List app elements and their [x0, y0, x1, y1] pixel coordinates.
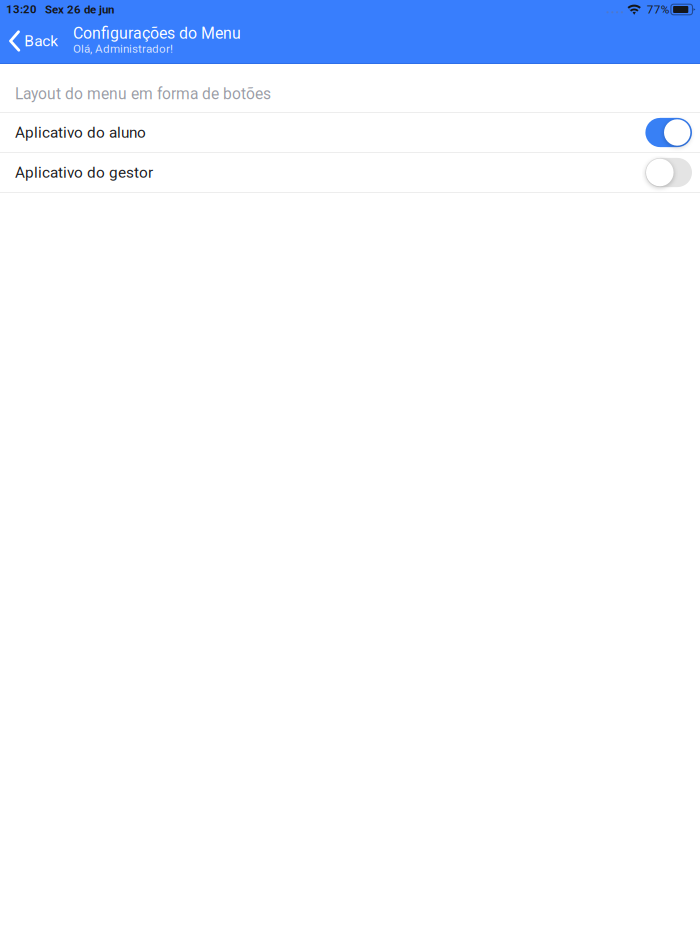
staticText: Sex 26 de jun	[45, 3, 114, 16]
staticText: 13:20	[6, 3, 37, 16]
button[interactable]: Aplicativo do aluno	[0, 113, 700, 153]
staticText: Aplicativo do aluno	[15, 123, 146, 141]
staticText: Layout do menu em forma de botões	[15, 85, 271, 103]
staticText: Aplicativo do gestor	[15, 163, 153, 181]
staticText: Configurações do Menu	[73, 24, 241, 43]
button[interactable]: Back	[0, 19, 67, 63]
button[interactable]: Aplicativo do gestor	[0, 153, 700, 193]
staticText: Back	[24, 32, 58, 50]
staticText: 77%	[647, 3, 670, 16]
staticText: Olá, Administrador!	[73, 42, 173, 56]
